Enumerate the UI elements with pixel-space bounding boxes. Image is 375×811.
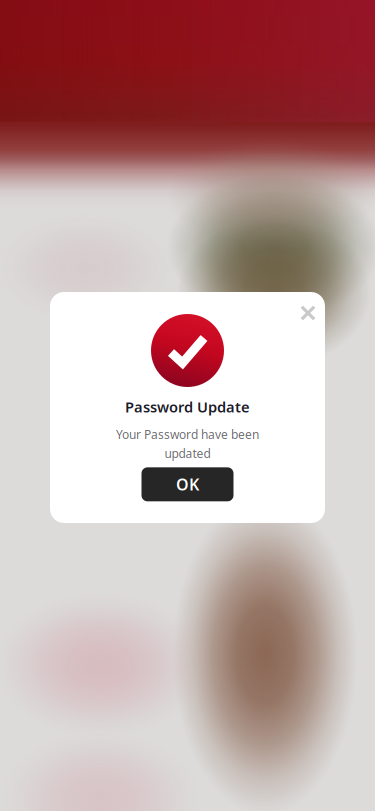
staticText: Your Password have been — [116, 426, 259, 442]
staticText: Password Update — [125, 397, 250, 416]
staticText: updated — [164, 445, 210, 461]
button[interactable]: OK — [141, 467, 233, 501]
button[interactable]: Close — [290, 295, 326, 331]
staticText: OK — [176, 474, 199, 495]
